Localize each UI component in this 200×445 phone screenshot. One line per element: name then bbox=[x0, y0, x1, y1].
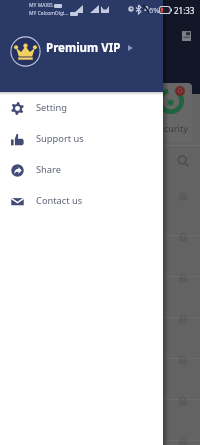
button[interactable]: Locked item bbox=[0, 298, 200, 339]
button[interactable]: Locked item bbox=[0, 339, 200, 380]
staticText: Share bbox=[36, 163, 61, 176]
staticText: 21:33 bbox=[174, 5, 195, 16]
staticText: Premium VIP bbox=[46, 40, 121, 56]
button[interactable]: Locked item bbox=[0, 216, 200, 257]
other: Locked item bbox=[178, 314, 188, 324]
other: Search bbox=[177, 155, 189, 167]
other: Locked item bbox=[178, 191, 188, 201]
button[interactable]: Support us bbox=[0, 123, 163, 154]
button[interactable]: Search bbox=[0, 146, 200, 175]
staticText: 6% bbox=[149, 5, 160, 15]
staticText: Support us bbox=[36, 132, 84, 145]
staticText: Contact us bbox=[36, 194, 83, 207]
button[interactable]: Contact us bbox=[0, 185, 163, 216]
button[interactable]: Locked item bbox=[0, 175, 200, 216]
other: Locked item bbox=[178, 396, 188, 406]
other: Locked item bbox=[178, 273, 188, 283]
other: Locked item bbox=[178, 437, 188, 445]
button[interactable]: Locked item bbox=[0, 257, 200, 298]
staticText: Setting bbox=[36, 101, 67, 114]
staticText: 0 bbox=[178, 86, 183, 96]
staticText: MY MAXIS bbox=[29, 2, 53, 9]
button[interactable]: Share bbox=[0, 154, 163, 185]
staticText: Security bbox=[154, 122, 188, 134]
button[interactable] bbox=[148, 83, 192, 142]
button[interactable]: Locked item bbox=[0, 380, 200, 421]
other: Locked item bbox=[178, 355, 188, 365]
button[interactable]: Locked item bbox=[0, 421, 200, 445]
button[interactable]: Premium VIP bbox=[0, 36, 163, 67]
button[interactable]: Setting bbox=[0, 92, 163, 123]
button[interactable]: News bbox=[179, 28, 193, 42]
staticText: MY CelcomDigi... bbox=[29, 10, 69, 17]
other: Locked item bbox=[178, 232, 188, 242]
